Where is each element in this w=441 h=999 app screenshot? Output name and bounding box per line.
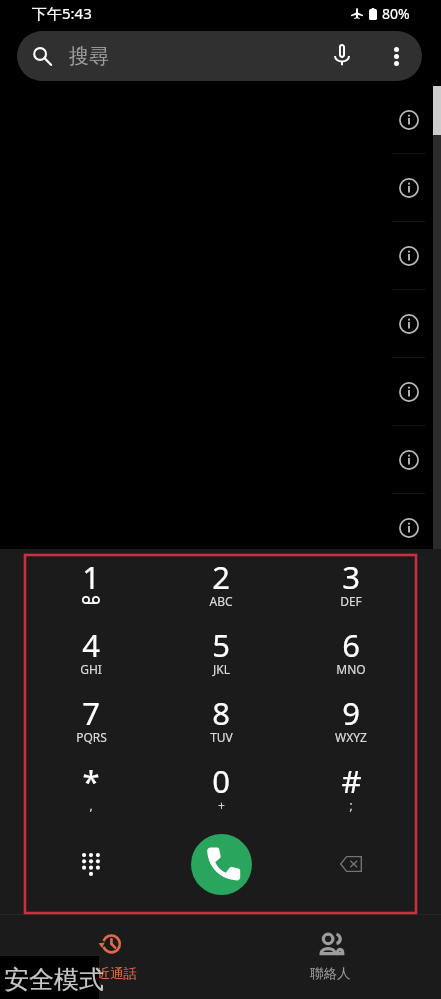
staticText: 80% [382, 4, 410, 23]
button[interactable]: Call details [0, 494, 441, 562]
staticText: 7 [82, 692, 100, 734]
button[interactable]: Voice search [321, 31, 371, 81]
staticText: 2 [212, 556, 230, 598]
staticText: ABC [209, 593, 233, 609]
button[interactable]: Call details [385, 232, 433, 280]
staticText: 6 [342, 624, 360, 666]
button[interactable]: 8 [156, 695, 286, 763]
staticText: 1 [82, 556, 100, 598]
staticText: 5 [212, 624, 230, 666]
staticText: WXYZ [335, 729, 367, 745]
staticText: GHI [80, 661, 102, 677]
staticText: * [82, 760, 100, 802]
staticText: MNO [336, 661, 366, 677]
button[interactable]: Call details [385, 368, 433, 416]
staticText: 9 [342, 692, 360, 734]
staticText: , [89, 797, 93, 813]
button[interactable]: * [26, 763, 156, 831]
staticText: 4 [82, 624, 100, 666]
button[interactable]: Backspace [286, 823, 416, 907]
staticText: 最近通話 [83, 965, 137, 982]
button[interactable]: 2 [156, 559, 286, 627]
staticText: ; [349, 797, 353, 813]
staticText: + [218, 797, 225, 813]
button[interactable]: # [286, 763, 416, 831]
button[interactable]: 0 [156, 763, 286, 831]
button[interactable]: Call [191, 834, 252, 895]
staticText: PQRS [76, 729, 107, 745]
button[interactable]: More options [371, 31, 421, 81]
button[interactable]: 6 [286, 627, 416, 695]
button[interactable]: Search [17, 31, 422, 81]
button[interactable]: Call details [385, 164, 433, 212]
staticText: 安全模式 [4, 964, 103, 995]
button[interactable]: Call details [0, 86, 441, 154]
button[interactable]: 聯絡人 [220, 915, 441, 999]
button[interactable]: 7 [26, 695, 156, 763]
button[interactable]: 9 [286, 695, 416, 763]
button[interactable]: 5 [156, 627, 286, 695]
button[interactable]: 4 [26, 627, 156, 695]
staticText: 3 [342, 556, 360, 598]
staticText: 下午5:43 [32, 3, 92, 23]
staticText: 聯絡人 [310, 965, 351, 982]
button[interactable]: Call details [0, 154, 441, 222]
staticText: # [341, 760, 362, 802]
button[interactable]: Call details [0, 358, 441, 426]
button[interactable]: Call details [385, 96, 433, 144]
button[interactable]: Show keypad [26, 823, 156, 907]
button[interactable]: 1 [26, 559, 156, 627]
button[interactable]: Call details [385, 436, 433, 484]
button[interactable]: Call details [0, 222, 441, 290]
button[interactable]: 最近通話 [0, 915, 220, 999]
button[interactable]: Call details [385, 300, 433, 348]
other: Search [32, 46, 52, 66]
staticText: 搜尋 [69, 44, 109, 69]
button[interactable]: Call details [0, 426, 441, 494]
staticText: DEF [340, 593, 362, 609]
button[interactable]: Call details [385, 504, 433, 552]
staticText: TUV [210, 729, 233, 745]
button[interactable]: 3 [286, 559, 416, 627]
staticText: 0 [212, 760, 230, 802]
staticText: 8 [212, 692, 230, 734]
button[interactable]: Call details [0, 290, 441, 358]
staticText: JKL [213, 661, 230, 677]
